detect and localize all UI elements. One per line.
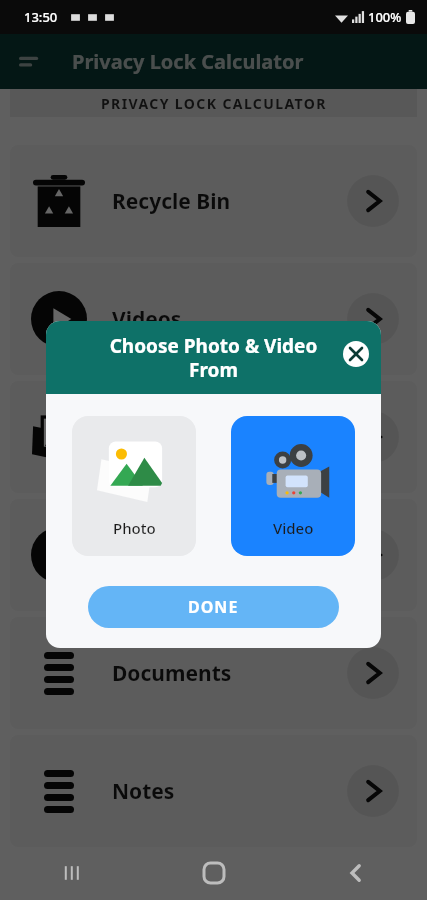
button[interactable]: Back (285, 846, 427, 900)
button[interactable]: Photo (72, 416, 196, 556)
button[interactable]: Video (231, 416, 355, 556)
button[interactable]: Home (143, 846, 285, 900)
button[interactable]: Photos (10, 381, 417, 493)
staticText: Videos (112, 305, 182, 334)
button[interactable]: Documents (10, 617, 417, 729)
staticText: 13:50 (24, 8, 58, 26)
staticText: Recycle Bin (112, 187, 231, 216)
staticText: Notes (112, 777, 175, 806)
staticText: Audio (112, 541, 173, 570)
staticText: Documents (112, 659, 232, 688)
button[interactable]: Audio (10, 499, 417, 611)
staticText: Privacy Lock Calculator (72, 48, 304, 75)
button[interactable]: Recycle Bin (10, 145, 417, 257)
staticText: Photos (112, 423, 185, 452)
button[interactable]: Recents (0, 846, 143, 900)
button[interactable]: Menu (8, 41, 50, 83)
staticText: PRIVACY LOCK CALCULATOR (101, 94, 327, 113)
staticText: DONE (188, 596, 239, 618)
button[interactable]: DONE (88, 586, 339, 628)
staticText: 100% (368, 8, 402, 26)
staticText: Choose Photo & Video From (92, 333, 335, 382)
button[interactable]: Notes (10, 735, 417, 847)
button[interactable]: Close (343, 341, 369, 367)
staticText: Photo (113, 518, 156, 538)
staticText: Video (273, 518, 314, 538)
button[interactable]: Videos (10, 263, 417, 375)
